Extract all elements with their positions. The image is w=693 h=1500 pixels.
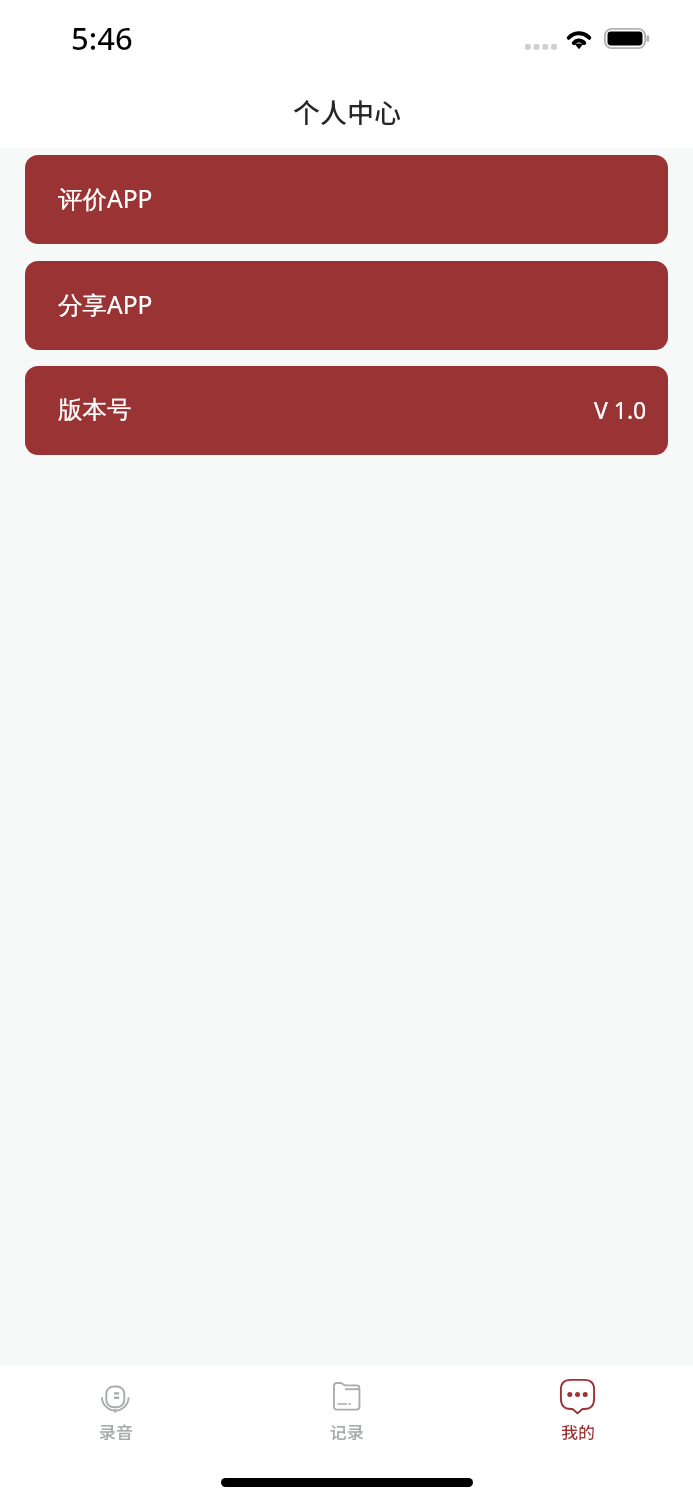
staticText: 我的 [561,1419,595,1444]
button[interactable]: 评价APP [25,155,668,244]
staticText: V 1.0 [594,394,647,425]
button[interactable]: 版本号 [25,366,668,455]
button[interactable]: Mine [462,1365,693,1460]
staticText: 个人中心 [293,92,401,131]
button[interactable]: Records [231,1365,462,1460]
staticText: 评价APP [58,182,153,215]
staticText: 录音 [99,1419,133,1444]
button[interactable]: 分享APP [25,261,668,350]
button[interactable]: Recordings [0,1365,231,1460]
staticText: 5:46 [71,17,133,59]
staticText: 记录 [330,1419,364,1444]
staticText: 版本号 [58,394,132,425]
staticText: 分享APP [58,288,153,321]
